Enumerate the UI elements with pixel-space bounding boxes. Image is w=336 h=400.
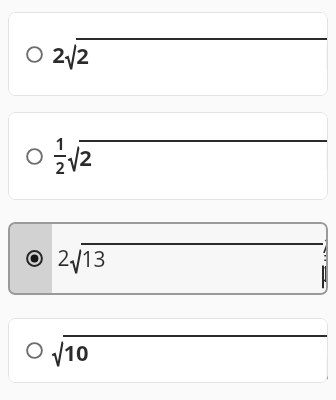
button[interactable]: 10 [8,318,328,383]
staticText: 13 [81,245,106,274]
staticText: 2 [79,142,92,172]
button[interactable]: 1 [8,112,328,200]
button[interactable]: 2 [8,222,328,295]
button[interactable]: 2 [8,12,328,96]
staticText: 2 [57,244,70,273]
staticText: 2 [52,39,65,69]
staticText: 10 [63,337,89,367]
staticText: 2 [76,40,89,70]
staticText: 2 [55,157,65,179]
staticText: 1 [55,133,65,155]
